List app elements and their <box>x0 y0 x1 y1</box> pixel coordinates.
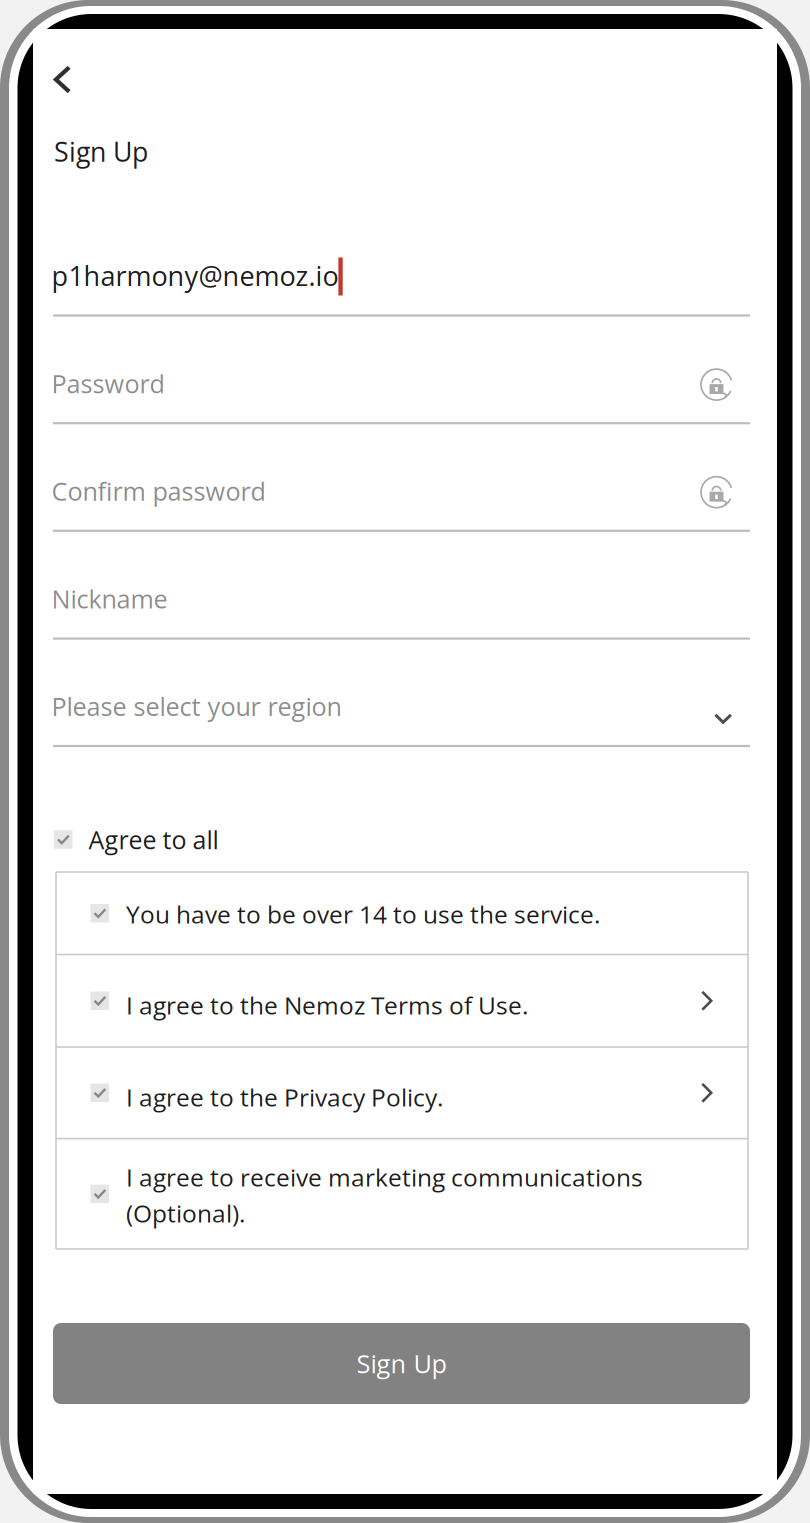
button[interactable]: Back <box>30 47 94 111</box>
button[interactable]: Agree to all <box>53 817 750 861</box>
button[interactable] <box>53 327 750 423</box>
staticText: Confirm password <box>51 474 265 508</box>
button[interactable]: You have to be over 14 to use the servic… <box>56 872 748 954</box>
button[interactable] <box>53 435 750 531</box>
staticText: I agree to receive marketing communicati… <box>126 1160 643 1194</box>
button[interactable]: I agree to the Nemoz Terms of Use. <box>56 954 748 1047</box>
staticText: Password <box>51 366 164 401</box>
staticText: Sign Up <box>356 1346 446 1381</box>
staticText: I agree to the Privacy Policy. <box>126 1080 443 1114</box>
staticText: Sign Up <box>54 133 148 170</box>
staticText: You have to be over 14 to use the servic… <box>126 897 600 931</box>
staticText: Please select your region <box>51 689 341 723</box>
button[interactable]: I agree to the Privacy Policy. <box>56 1047 748 1139</box>
button[interactable]: Sign Up <box>53 1323 750 1404</box>
staticText: (Optional). <box>126 1196 245 1230</box>
staticText: Agree to all <box>88 822 218 856</box>
staticText: Nickname <box>51 581 167 616</box>
button[interactable] <box>53 543 750 639</box>
staticText: p1harmony@nemoz.io <box>51 257 338 294</box>
staticText: I agree to the Nemoz Terms of Use. <box>126 988 528 1022</box>
button[interactable]: I agree to receive marketing communicati… <box>56 1139 748 1249</box>
button[interactable] <box>53 650 750 746</box>
button[interactable] <box>53 219 750 315</box>
